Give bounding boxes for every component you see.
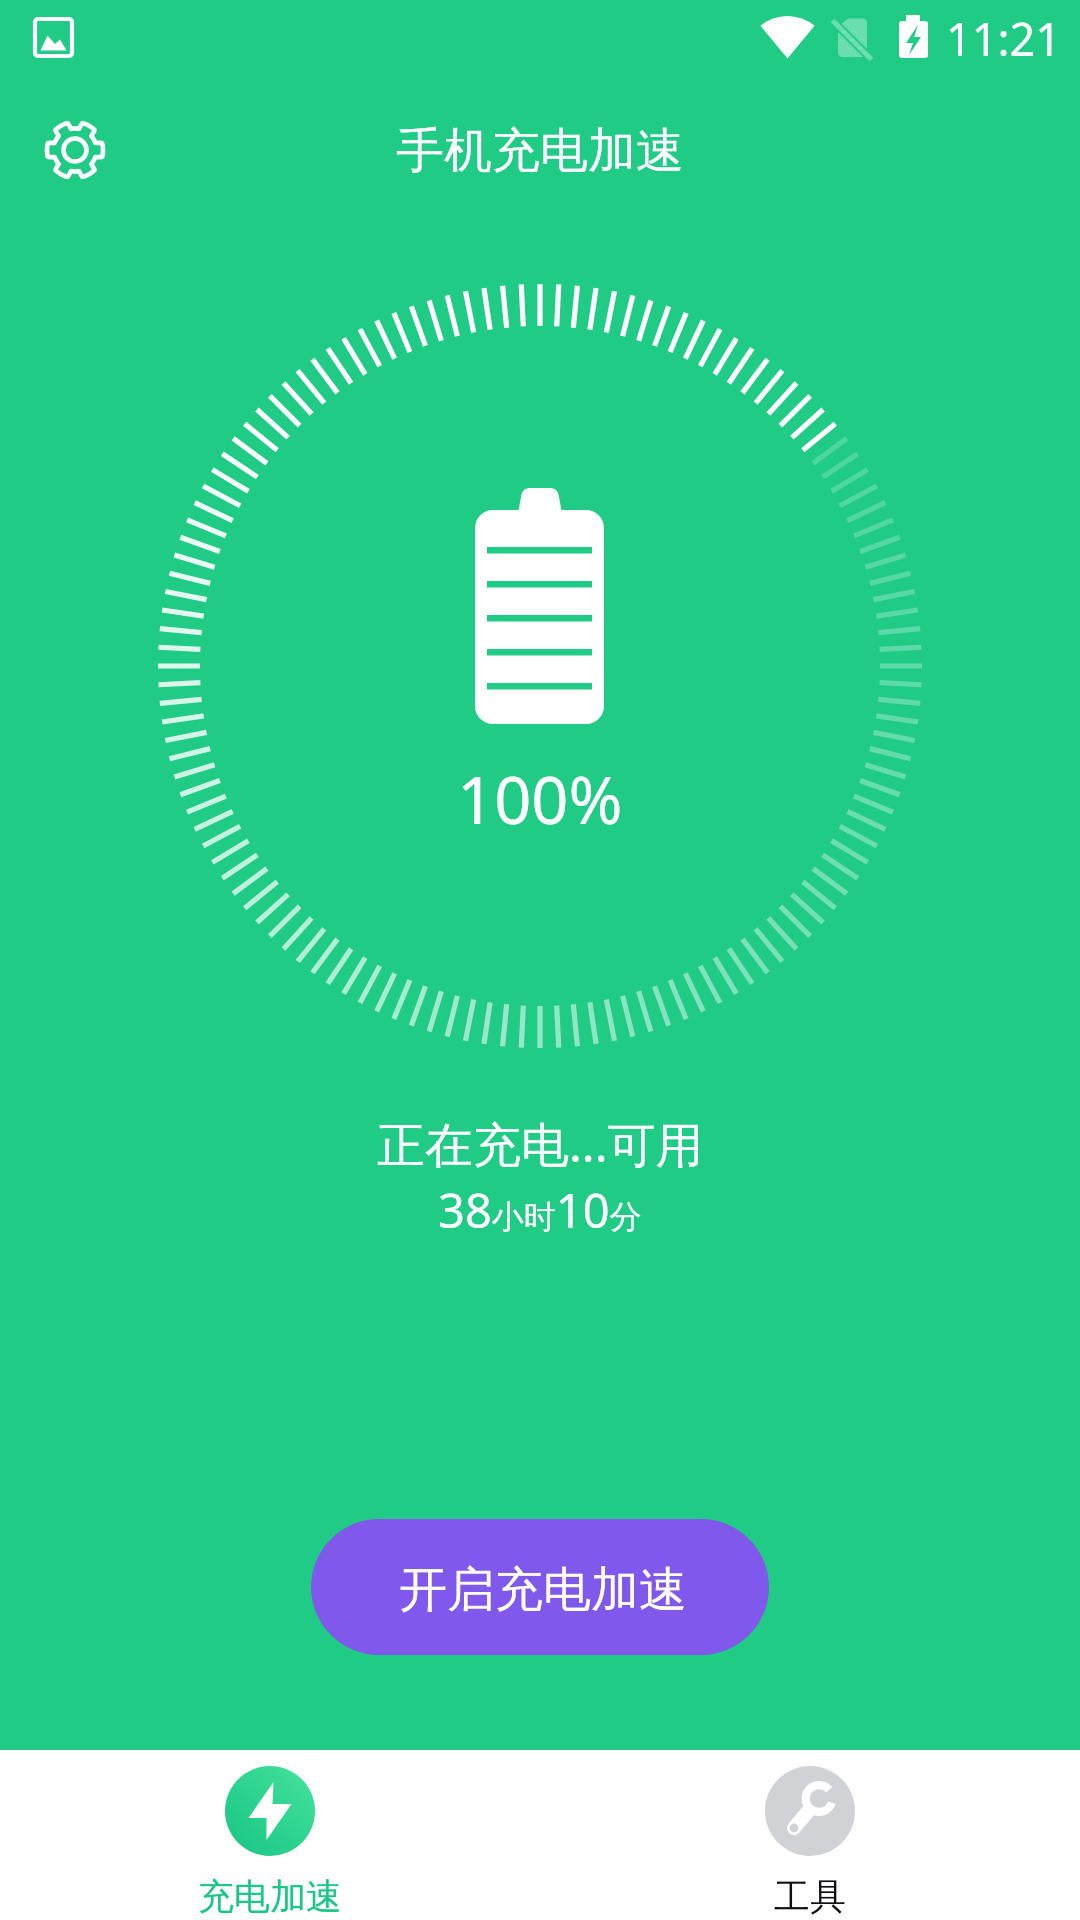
staticText: 工具	[774, 1874, 846, 1919]
staticText: 正在充电...可用	[377, 1111, 704, 1177]
staticText: 100%	[457, 755, 623, 844]
staticText: 开启充电加速	[399, 1560, 687, 1620]
button[interactable]: Settings	[37, 112, 113, 188]
staticText: 11:21	[946, 8, 1062, 69]
button[interactable]: 充电加速	[0, 1750, 540, 1920]
staticText: 38小时10分	[438, 1178, 642, 1242]
button[interactable]: 开启充电加速	[311, 1519, 769, 1655]
staticText: 手机充电加速	[396, 121, 684, 181]
button[interactable]: 工具	[540, 1750, 1080, 1920]
staticText: 充电加速	[198, 1874, 342, 1919]
